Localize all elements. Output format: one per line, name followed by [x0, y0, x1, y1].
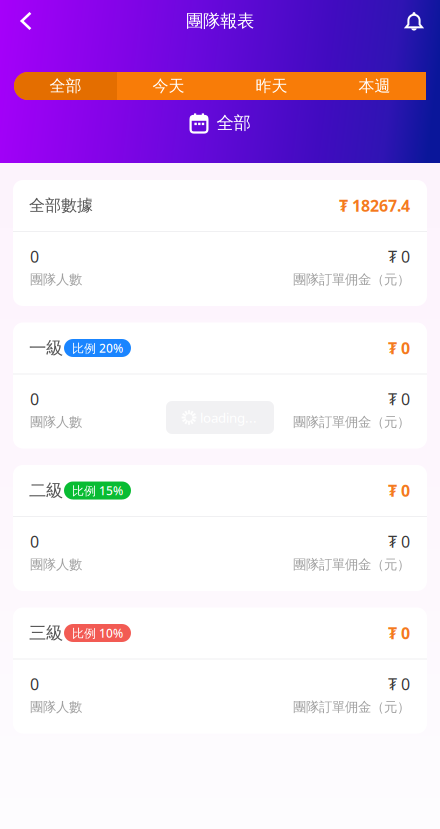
staticText: 團隊人數: [30, 556, 82, 573]
staticText: 團隊人數: [30, 414, 82, 430]
staticText: 團隊訂單佣金（元）: [293, 699, 410, 715]
staticText: ₮ 18267.4: [339, 195, 410, 216]
staticText: ₮ 0: [388, 388, 410, 410]
staticText: ₮ 0: [388, 673, 410, 695]
staticText: ₮ 0: [388, 337, 410, 359]
staticText: ₮ 0: [388, 622, 410, 644]
staticText: 二級: [29, 480, 63, 501]
staticText: 0: [30, 246, 39, 267]
button[interactable]: 今天: [117, 72, 220, 100]
staticText: ₮ 0: [388, 531, 410, 552]
staticText: 三級: [29, 622, 63, 644]
staticText: 團隊人數: [30, 699, 82, 715]
staticText: 0: [30, 531, 39, 552]
staticText: 今天: [152, 76, 184, 96]
staticText: loading...: [200, 409, 257, 426]
staticText: 0: [30, 388, 39, 410]
staticText: 全部: [49, 76, 81, 96]
staticText: 一級: [29, 337, 63, 359]
staticText: 比例 20%: [72, 340, 123, 356]
staticText: ₮ 0: [388, 246, 410, 267]
staticText: 0: [30, 673, 39, 695]
staticText: 本週: [358, 76, 390, 96]
staticText: 昨天: [255, 76, 287, 96]
staticText: 比例 10%: [72, 625, 123, 641]
staticText: 團隊人數: [30, 271, 82, 288]
staticText: 比例 15%: [72, 482, 123, 498]
staticText: 團隊報表: [186, 10, 254, 32]
staticText: 全部數據: [29, 196, 93, 215]
staticText: 團隊訂單佣金（元）: [293, 556, 410, 573]
button[interactable]: 昨天: [220, 72, 323, 100]
button[interactable]: 全部: [14, 72, 117, 100]
staticText: ₮ 0: [388, 480, 410, 501]
button[interactable]: Notifications: [393, 0, 435, 42]
staticText: 全部: [216, 112, 250, 134]
button[interactable]: Back: [5, 0, 47, 42]
staticText: 團隊訂單佣金（元）: [293, 271, 410, 288]
staticText: 團隊訂單佣金（元）: [293, 414, 410, 430]
button[interactable]: 全部: [179, 111, 260, 135]
button[interactable]: 本週: [323, 72, 426, 100]
